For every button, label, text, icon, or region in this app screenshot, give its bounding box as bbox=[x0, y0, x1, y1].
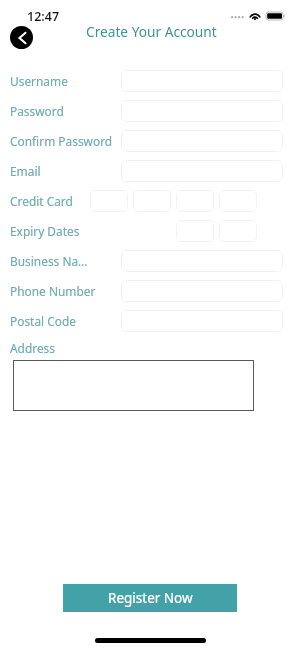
button[interactable] bbox=[219, 220, 257, 242]
button[interactable] bbox=[121, 250, 283, 272]
button[interactable] bbox=[13, 360, 254, 411]
button[interactable] bbox=[121, 130, 283, 152]
staticText: Phone Number bbox=[10, 283, 96, 299]
staticText: Address bbox=[10, 340, 55, 356]
button[interactable] bbox=[121, 280, 283, 302]
button[interactable] bbox=[90, 190, 128, 212]
staticText: Username bbox=[10, 73, 68, 89]
button[interactable]: Back bbox=[10, 26, 33, 49]
button[interactable] bbox=[121, 100, 283, 122]
staticText: Create Your Account bbox=[86, 22, 217, 41]
button[interactable] bbox=[133, 190, 171, 212]
button[interactable] bbox=[121, 160, 283, 182]
staticText: Register Now bbox=[108, 589, 193, 607]
staticText: Credit Card bbox=[10, 193, 73, 209]
staticText: Postal Code bbox=[10, 313, 76, 329]
staticText: Expiry Dates bbox=[10, 223, 80, 239]
button[interactable] bbox=[121, 310, 283, 332]
staticText: Password bbox=[10, 103, 64, 119]
button[interactable] bbox=[176, 220, 214, 242]
staticText: Business Na… bbox=[10, 253, 88, 269]
staticText: Email bbox=[10, 163, 41, 179]
button[interactable] bbox=[121, 70, 283, 92]
button[interactable] bbox=[219, 190, 257, 212]
staticText: Confirm Password bbox=[10, 133, 113, 149]
staticText: 12:47 bbox=[27, 8, 60, 25]
button[interactable] bbox=[176, 190, 214, 212]
button[interactable]: Register Now bbox=[63, 584, 237, 612]
